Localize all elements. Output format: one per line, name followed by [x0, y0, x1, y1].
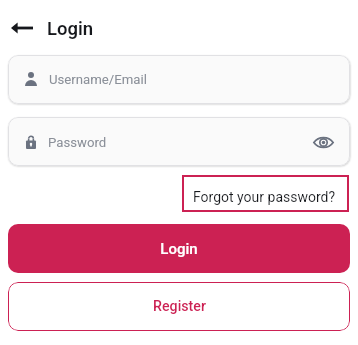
staticText: Login	[47, 18, 94, 40]
staticText: Register	[153, 298, 206, 315]
button[interactable]: Username/Email	[8, 55, 350, 104]
button[interactable]: Show password	[304, 120, 342, 164]
staticText: Username/Email	[49, 72, 147, 87]
button[interactable]: Back	[4, 11, 39, 45]
staticText: Password	[48, 135, 107, 150]
staticText: Login	[160, 240, 198, 258]
staticText: Forgot your password?	[193, 189, 336, 205]
button[interactable]: Login	[8, 224, 350, 273]
button[interactable]: Forgot your password?	[182, 175, 349, 212]
button[interactable]: Register	[8, 282, 350, 331]
button[interactable]: Password	[8, 117, 350, 166]
